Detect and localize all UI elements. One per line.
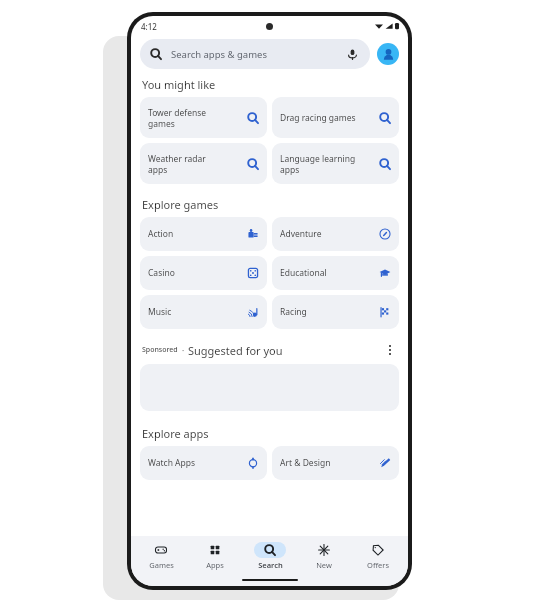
button[interactable]: Adventure: [272, 217, 399, 251]
staticText: Explore apps: [142, 426, 209, 441]
button[interactable]: Drag racing games: [272, 97, 399, 138]
button[interactable]: Educational: [272, 256, 399, 290]
staticText: Sponsored: [142, 345, 178, 355]
staticText: Drag racing games: [280, 112, 375, 124]
button[interactable]: Offers: [354, 540, 402, 572]
staticText: Apps: [206, 560, 224, 570]
staticText: Music: [148, 306, 243, 318]
staticText: Adventure: [280, 228, 375, 240]
staticText: 4:12: [141, 21, 157, 32]
button[interactable]: Art & Design: [272, 446, 399, 480]
staticText: Watch Apps: [148, 457, 243, 469]
button[interactable]: Apps: [191, 540, 239, 572]
staticText: Offers: [367, 560, 389, 570]
staticText: Search apps & games: [171, 48, 267, 61]
button[interactable]: Voice search: [344, 46, 360, 62]
staticText: Racing: [280, 306, 375, 318]
button[interactable]: Action: [140, 217, 267, 251]
button[interactable]: Racing: [272, 295, 399, 329]
staticText: New: [316, 560, 332, 570]
staticText: Educational: [280, 267, 375, 279]
button[interactable]: Music: [140, 295, 267, 329]
staticText: Tower defense games: [148, 107, 243, 129]
button[interactable]: Language learning apps: [272, 143, 399, 184]
staticText: Games: [149, 560, 174, 570]
staticText: Search: [258, 560, 283, 570]
staticText: Explore games: [142, 197, 219, 212]
button[interactable]: Watch Apps: [140, 446, 267, 480]
button[interactable]: Casino: [140, 256, 267, 290]
staticText: ·: [180, 345, 187, 356]
staticText: Weather radar apps: [148, 153, 243, 175]
button[interactable]: More options: [381, 341, 399, 359]
staticText: Suggested for you: [188, 343, 283, 358]
button[interactable]: Games: [137, 540, 185, 572]
button[interactable]: Weather radar apps: [140, 143, 267, 184]
staticText: Action: [148, 228, 243, 240]
staticText: Casino: [148, 267, 243, 279]
button[interactable]: New: [300, 540, 348, 572]
button[interactable]: Account: [377, 43, 399, 65]
button[interactable]: Tower defense games: [140, 97, 267, 138]
staticText: You might like: [142, 77, 216, 92]
button[interactable]: Search apps & games: [140, 39, 370, 69]
staticText: Language learning apps: [280, 153, 375, 175]
staticText: Art & Design: [280, 457, 375, 469]
button[interactable]: Search: [246, 540, 294, 572]
